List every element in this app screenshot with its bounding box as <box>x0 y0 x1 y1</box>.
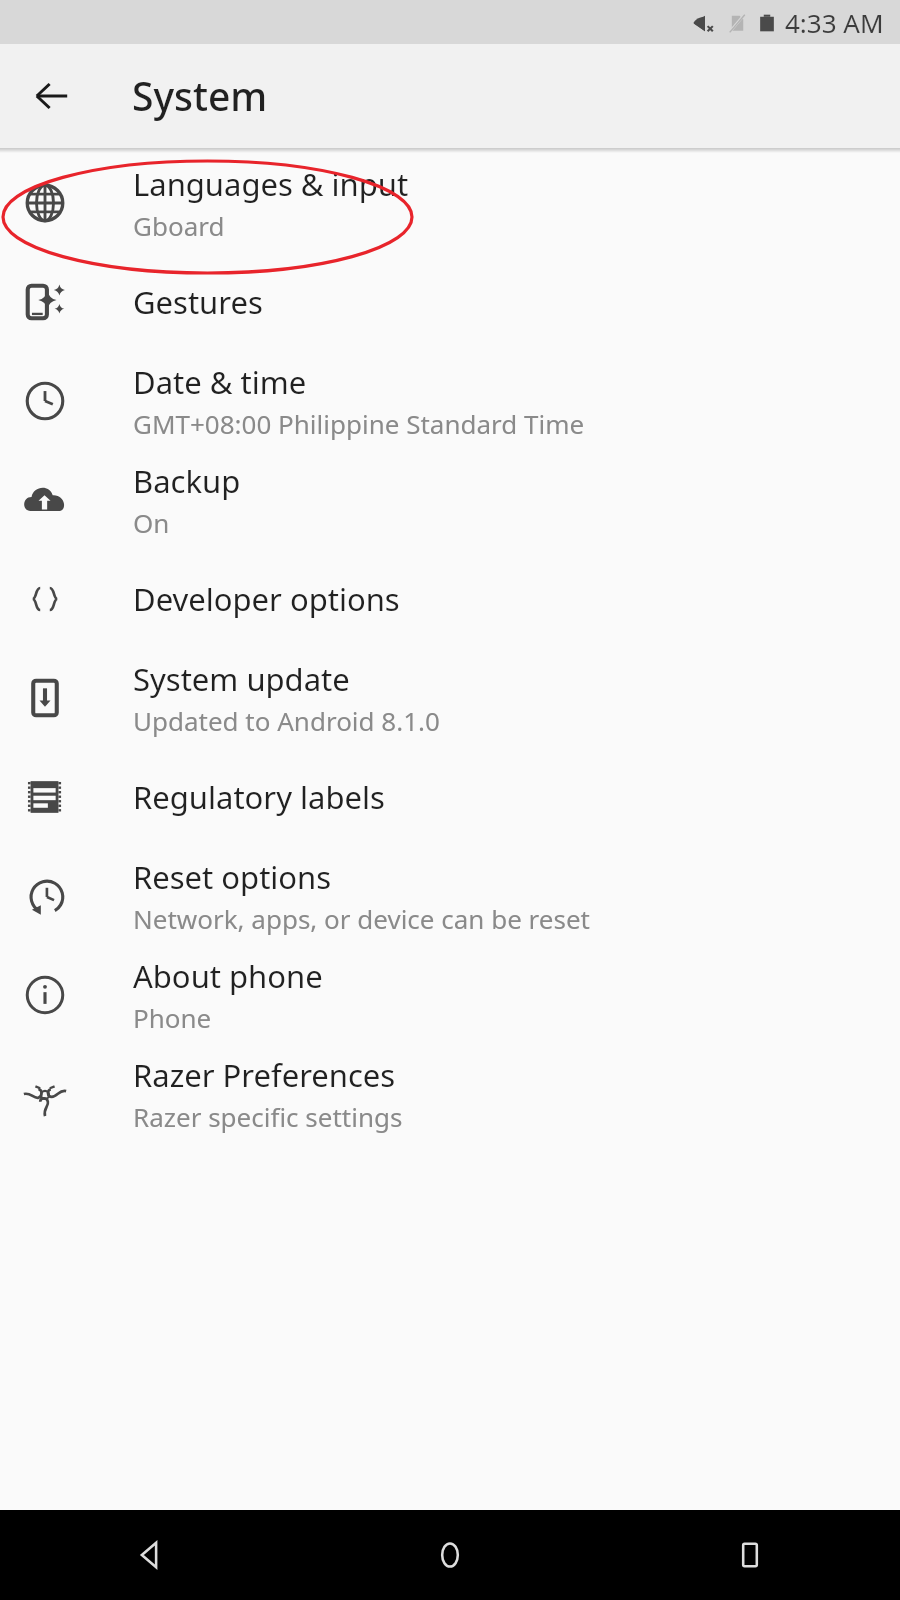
staticText: GMT+08:00 Philippine Standard Time <box>133 406 585 441</box>
staticText: Gestures <box>133 281 263 323</box>
button[interactable]: Languages & input <box>0 153 900 252</box>
button[interactable]: Developer options <box>0 549 900 648</box>
staticText: System update <box>133 658 350 700</box>
button[interactable]: Regulatory labels <box>0 747 900 846</box>
staticText: About phone <box>133 955 323 997</box>
staticText: Developer options <box>133 578 400 620</box>
staticText: Gboard <box>133 208 225 243</box>
button[interactable]: Recent apps <box>600 1510 900 1600</box>
button[interactable]: Backup <box>0 450 900 549</box>
staticText: Network, apps, or device can be reset <box>133 901 590 936</box>
staticText: 4:33 AM <box>785 5 884 40</box>
button[interactable]: Date & time <box>0 351 900 450</box>
button[interactable]: Reset options <box>0 846 900 945</box>
button[interactable]: Razer Preferences <box>0 1044 900 1143</box>
staticText: Regulatory labels <box>133 776 385 818</box>
staticText: Phone <box>133 1000 212 1035</box>
button[interactable]: Back <box>20 64 84 128</box>
staticText: Updated to Android 8.1.0 <box>133 703 440 738</box>
staticText: System <box>132 69 268 122</box>
staticText: Languages & input <box>133 163 409 205</box>
staticText: On <box>133 505 170 540</box>
staticText: Backup <box>133 460 241 502</box>
button[interactable]: Back <box>0 1510 300 1600</box>
staticText: Razer Preferences <box>133 1054 396 1096</box>
button[interactable]: Gestures <box>0 252 900 351</box>
button[interactable]: About phone <box>0 945 900 1044</box>
staticText: Date & time <box>133 361 307 403</box>
staticText: Reset options <box>133 856 332 898</box>
button[interactable]: Home <box>300 1510 600 1600</box>
staticText: Razer specific settings <box>133 1099 403 1134</box>
button[interactable]: System update <box>0 648 900 747</box>
